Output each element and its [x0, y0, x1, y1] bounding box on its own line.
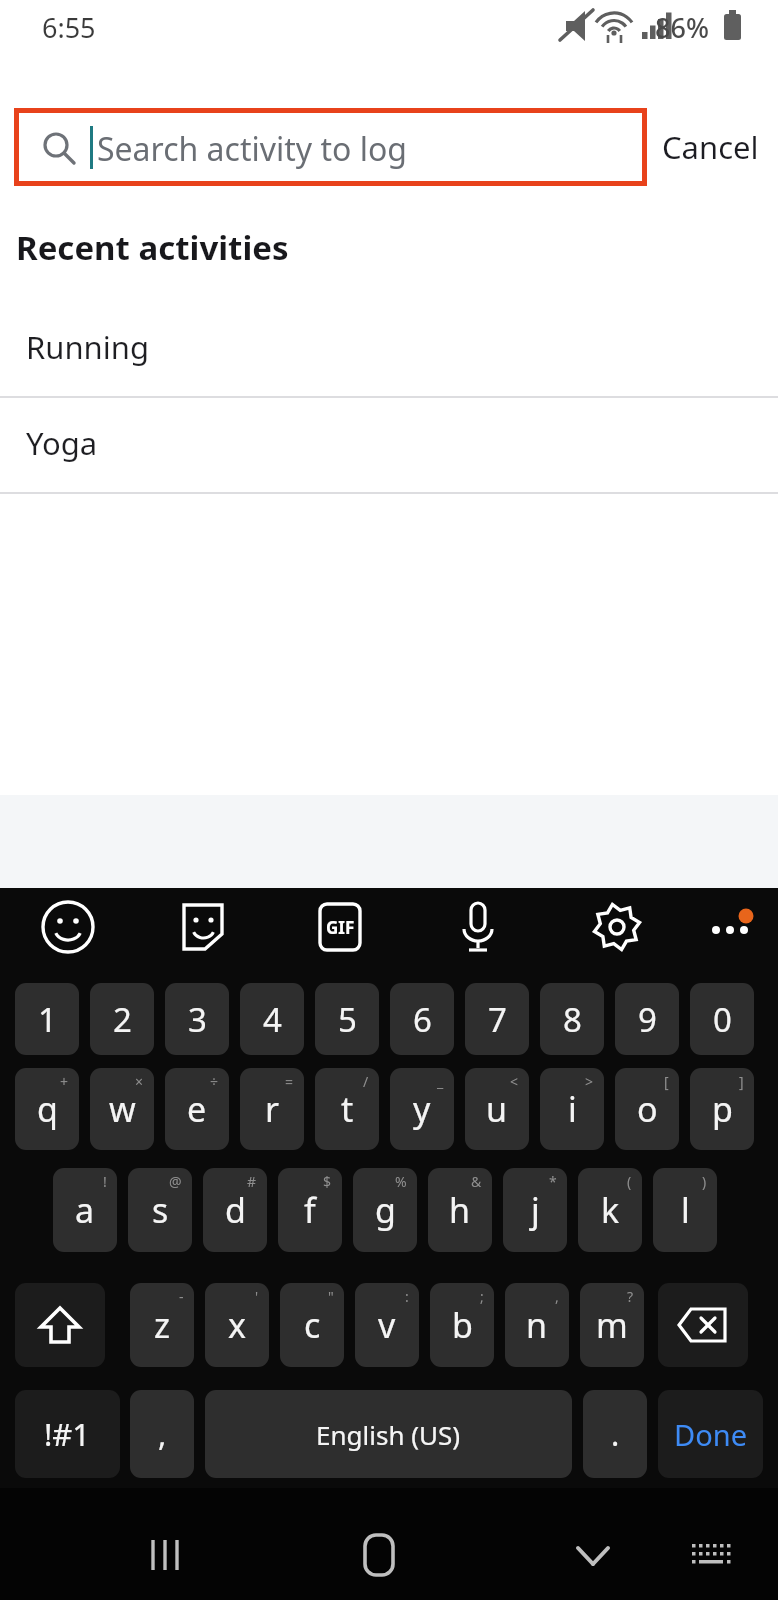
button[interactable]: ,: [130, 1390, 194, 1478]
button[interactable]: Home: [348, 1524, 410, 1586]
button[interactable]: 7: [465, 983, 529, 1055]
staticText: (: [627, 1172, 632, 1191]
button[interactable]: x: [205, 1283, 269, 1367]
button[interactable]: 6: [390, 983, 454, 1055]
staticText: q: [37, 1086, 58, 1132]
button[interactable]: k: [578, 1168, 642, 1252]
button[interactable]: Change keyboard: [682, 1524, 744, 1586]
button[interactable]: v: [355, 1283, 419, 1367]
button[interactable]: u: [465, 1068, 529, 1150]
button[interactable]: Cancel: [648, 112, 772, 182]
staticText: 0: [713, 997, 732, 1042]
button[interactable]: 4: [240, 983, 304, 1055]
button[interactable]: 2: [90, 983, 154, 1055]
staticText: h: [449, 1187, 471, 1233]
button[interactable]: a: [53, 1168, 117, 1252]
staticText: #: [247, 1172, 257, 1191]
button[interactable]: Search activity to log: [19, 113, 642, 181]
button[interactable]: .: [583, 1390, 647, 1478]
staticText: 7: [488, 997, 507, 1042]
button[interactable]: Recent apps: [135, 1524, 197, 1586]
button[interactable]: y: [390, 1068, 454, 1150]
button[interactable]: More options: [702, 897, 762, 957]
staticText: y: [413, 1086, 431, 1132]
button[interactable]: r: [240, 1068, 304, 1150]
button[interactable]: Done: [658, 1390, 763, 1478]
staticText: Search activity to log: [97, 127, 407, 171]
staticText: j: [531, 1187, 540, 1233]
staticText: z: [154, 1302, 170, 1348]
staticText: u: [486, 1086, 508, 1132]
button[interactable]: f: [278, 1168, 342, 1252]
staticText: a: [75, 1187, 95, 1233]
staticText: ': [255, 1287, 259, 1306]
button[interactable]: English (US): [205, 1390, 572, 1478]
button[interactable]: 0: [690, 983, 754, 1055]
staticText: ,: [555, 1287, 559, 1306]
button[interactable]: 5: [315, 983, 379, 1055]
staticText: n: [526, 1302, 548, 1348]
staticText: Recent activities: [16, 225, 289, 270]
button[interactable]: l: [653, 1168, 717, 1252]
staticText: *: [549, 1172, 557, 1191]
button[interactable]: 8: [540, 983, 604, 1055]
button[interactable]: 1: [15, 983, 79, 1055]
staticText: 6: [413, 997, 432, 1042]
button[interactable]: q: [15, 1068, 79, 1150]
button[interactable]: z: [130, 1283, 194, 1367]
button[interactable]: h: [428, 1168, 492, 1252]
button[interactable]: Backspace: [658, 1283, 748, 1367]
button[interactable]: o: [615, 1068, 679, 1150]
button[interactable]: d: [203, 1168, 267, 1252]
staticText: ]: [739, 1072, 744, 1091]
staticText: p: [712, 1086, 733, 1132]
button[interactable]: Running: [0, 300, 778, 396]
button[interactable]: Hide keyboard: [562, 1524, 624, 1586]
button[interactable]: s: [128, 1168, 192, 1252]
button[interactable]: i: [540, 1068, 604, 1150]
button[interactable]: !#1: [15, 1390, 120, 1478]
button[interactable]: Settings: [587, 897, 647, 957]
staticText: 8: [563, 997, 582, 1042]
staticText: !#1: [44, 1413, 91, 1455]
staticText: ": [328, 1287, 334, 1306]
button[interactable]: b: [430, 1283, 494, 1367]
staticText: c: [304, 1302, 321, 1348]
button[interactable]: t: [315, 1068, 379, 1150]
staticText: r: [265, 1086, 280, 1132]
staticText: Cancel: [662, 126, 759, 168]
button[interactable]: j: [503, 1168, 567, 1252]
staticText: ;: [480, 1287, 484, 1306]
staticText: 2: [113, 997, 132, 1042]
staticText: English (US): [316, 1417, 461, 1452]
button[interactable]: p: [690, 1068, 754, 1150]
button[interactable]: g: [353, 1168, 417, 1252]
staticText: 86%: [655, 9, 709, 46]
button[interactable]: GIF: [310, 897, 370, 957]
staticText: d: [225, 1187, 246, 1233]
button[interactable]: 3: [165, 983, 229, 1055]
staticText: v: [378, 1302, 396, 1348]
button[interactable]: m: [580, 1283, 644, 1367]
staticText: _: [437, 1072, 444, 1091]
staticText: ×: [135, 1072, 144, 1091]
staticText: >: [585, 1072, 594, 1091]
button[interactable]: Shift: [15, 1283, 105, 1367]
button[interactable]: c: [280, 1283, 344, 1367]
button[interactable]: 9: [615, 983, 679, 1055]
button[interactable]: Voice input: [448, 897, 508, 957]
button[interactable]: n: [505, 1283, 569, 1367]
button[interactable]: e: [165, 1068, 229, 1150]
button[interactable]: Yoga: [0, 398, 778, 492]
staticText: @: [169, 1172, 182, 1191]
staticText: ): [702, 1172, 707, 1191]
button[interactable]: Stickers: [174, 897, 234, 957]
staticText: -: [179, 1287, 184, 1306]
staticText: $: [323, 1172, 332, 1191]
staticText: 6:55: [42, 9, 96, 46]
button[interactable]: Emoji: [38, 897, 98, 957]
button[interactable]: w: [90, 1068, 154, 1150]
staticText: ,: [158, 1413, 167, 1455]
staticText: 3: [188, 997, 207, 1042]
staticText: m: [596, 1302, 628, 1348]
